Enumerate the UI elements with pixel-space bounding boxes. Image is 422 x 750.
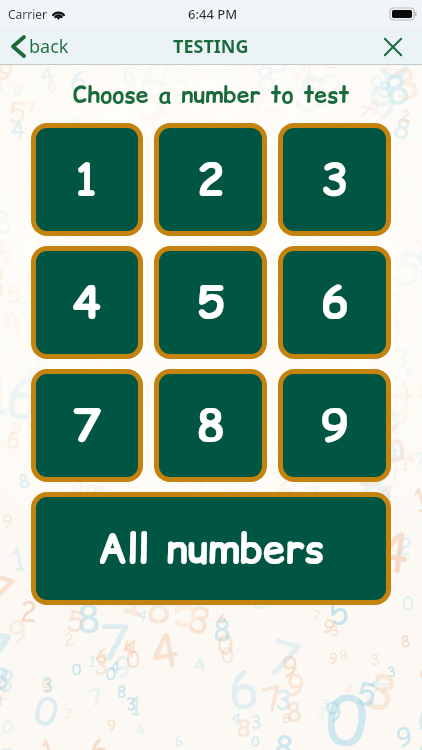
staticText: 6 xyxy=(321,271,349,334)
staticText: 5 xyxy=(197,271,225,334)
button[interactable]: Close xyxy=(376,30,410,64)
staticText: Carrier xyxy=(8,6,48,22)
staticText: back xyxy=(29,34,69,59)
button[interactable]: back xyxy=(0,28,79,65)
staticText: 2 xyxy=(197,148,225,211)
staticText: All numbers xyxy=(98,521,325,577)
button[interactable]: 4 xyxy=(31,246,143,359)
staticText: TESTING xyxy=(173,34,249,59)
staticText: 6:44 PM xyxy=(188,5,238,23)
staticText: Choose a number to test xyxy=(0,79,422,111)
staticText: 1 xyxy=(73,148,101,211)
staticText: 7 xyxy=(73,394,101,457)
staticText: 8 xyxy=(197,394,225,457)
button[interactable]: All numbers xyxy=(31,492,391,605)
staticText: 9 xyxy=(321,394,349,457)
button[interactable]: 8 xyxy=(154,369,267,482)
button[interactable]: 3 xyxy=(278,123,391,236)
staticText: 3 xyxy=(321,148,349,211)
staticText: 4 xyxy=(73,271,101,334)
button[interactable]: 5 xyxy=(154,246,267,359)
button[interactable]: 7 xyxy=(31,369,143,482)
button[interactable]: 6 xyxy=(278,246,391,359)
button[interactable]: 9 xyxy=(278,369,391,482)
button[interactable]: 2 xyxy=(154,123,267,236)
button[interactable]: 1 xyxy=(31,123,143,236)
